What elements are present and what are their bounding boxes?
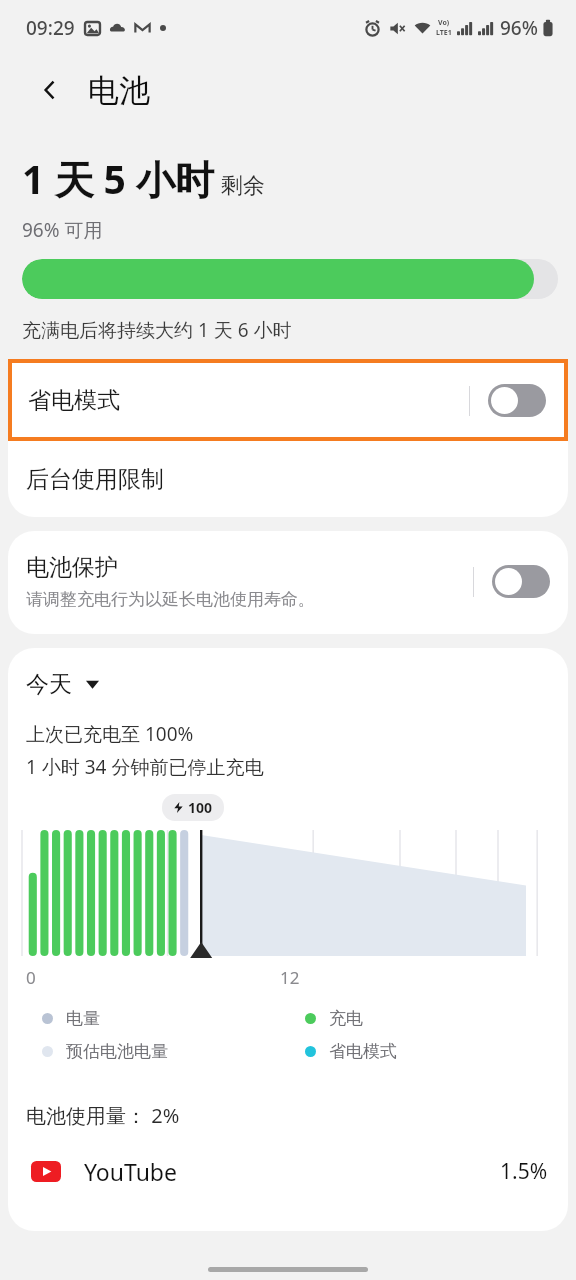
staticText: 充满电后将持续大约 1 天 6 小时 xyxy=(22,317,292,343)
staticText: 1 天 5 小时 xyxy=(22,152,215,205)
staticText: 电池保护 xyxy=(26,553,118,582)
staticText: 100 xyxy=(188,798,213,817)
staticText: Vo) xyxy=(438,18,450,28)
staticText: 预估电池电量 xyxy=(66,1041,168,1062)
button[interactable]: Toggle xyxy=(492,565,550,598)
staticText: 后台使用限制 xyxy=(26,465,164,494)
button[interactable]: Toggle xyxy=(488,384,546,417)
staticText: 96% xyxy=(500,15,538,41)
staticText: 剩余 xyxy=(221,172,265,200)
staticText: 上次已充电至 100% xyxy=(26,721,194,747)
staticText: 电量 xyxy=(66,1008,100,1029)
staticText: 请调整充电行为以延长电池使用寿命。 xyxy=(26,589,315,610)
button[interactable]: 后台使用限制 xyxy=(8,441,568,517)
staticText: 09:29 xyxy=(26,15,75,41)
staticText: 今天 xyxy=(26,670,72,699)
staticText: 电池使用量： 2% xyxy=(26,1102,180,1129)
staticText: 电池 xyxy=(88,71,150,110)
button[interactable]: 电池保护 xyxy=(8,531,568,634)
button[interactable]: Back xyxy=(28,68,72,112)
staticText: 0 xyxy=(26,966,36,989)
staticText: 1.5% xyxy=(500,1157,548,1186)
staticText: YouTube xyxy=(84,1156,500,1187)
staticText: 12 xyxy=(280,966,300,989)
button[interactable]: 今天 xyxy=(26,670,99,699)
staticText: 省电模式 xyxy=(329,1041,397,1062)
staticText: 充电 xyxy=(329,1008,363,1029)
button[interactable]: YouTube xyxy=(8,1151,568,1191)
staticText: 96% 可用 xyxy=(22,217,103,243)
staticText: 1 小时 34 分钟前已停止充电 xyxy=(26,754,264,780)
staticText: LTE1 xyxy=(436,28,452,38)
button[interactable]: 省电模式 xyxy=(12,363,564,437)
staticText: 省电模式 xyxy=(28,386,469,415)
